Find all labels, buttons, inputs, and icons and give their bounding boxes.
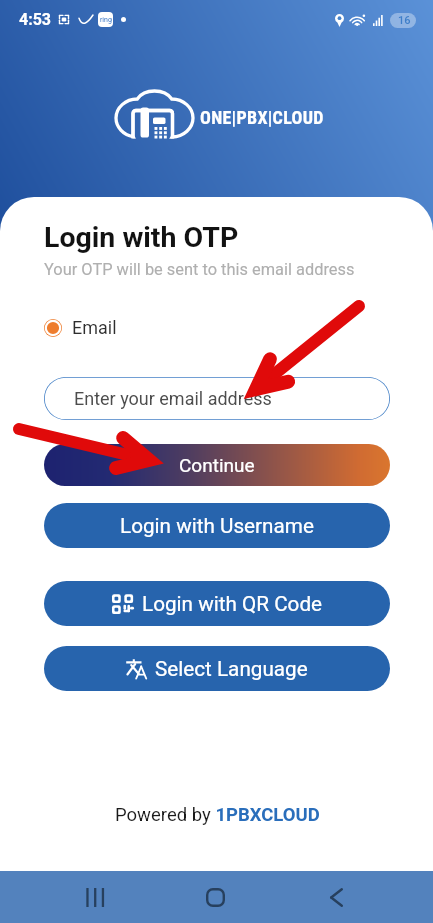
- staticText: 4:53: [19, 10, 52, 29]
- staticText: Your OTP will be sent to this email addr…: [44, 260, 355, 279]
- staticText: Login with QR Code: [142, 592, 323, 616]
- button[interactable]: Email: [44, 317, 117, 338]
- button[interactable]: Login with Username: [44, 503, 390, 548]
- button[interactable]: Select Language: [44, 646, 390, 691]
- button[interactable]: Continue: [44, 444, 390, 486]
- staticText: Login with Username: [120, 514, 314, 538]
- button[interactable]: Home: [189, 871, 241, 923]
- button[interactable]: Back: [310, 871, 362, 923]
- staticText: Email: [72, 317, 117, 338]
- staticText: ONE|PBX|CLOUD: [200, 107, 324, 128]
- staticText: Enter your email address: [74, 388, 272, 409]
- staticText: ring: [100, 16, 112, 24]
- staticText: Continue: [179, 454, 255, 476]
- button[interactable]: Login with QR Code: [44, 581, 390, 626]
- staticText: Select Language: [155, 657, 308, 681]
- button[interactable]: Enter your email address: [44, 377, 390, 420]
- staticText: Login with OTP: [44, 221, 239, 254]
- staticText: 16: [398, 14, 411, 27]
- staticText: Powered by 1PBXCLOUD: [115, 804, 320, 826]
- button[interactable]: Recent apps: [68, 871, 120, 923]
